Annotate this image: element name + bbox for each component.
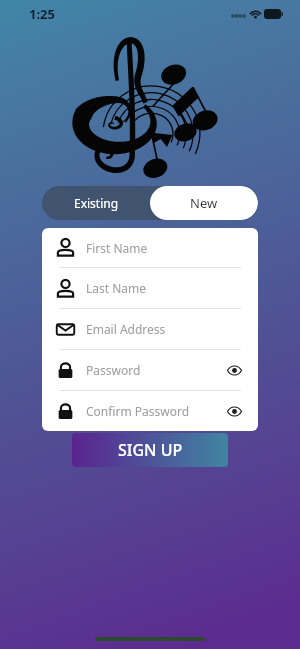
button[interactable]: New (150, 186, 258, 220)
staticText: 1:25 (29, 5, 55, 23)
button[interactable]: Email Address (42, 309, 258, 349)
staticText: Last Name (86, 280, 147, 296)
button[interactable]: Existing (42, 186, 150, 220)
button[interactable]: SIGN UP (72, 433, 228, 467)
staticText: Existing (74, 195, 119, 211)
staticText: Email Address (86, 321, 166, 337)
button[interactable]: Password (42, 350, 258, 390)
button[interactable]: Show password (222, 358, 246, 382)
button[interactable]: Show password (222, 399, 246, 423)
button[interactable]: First Name (42, 228, 258, 267)
staticText: SIGN UP (118, 439, 183, 461)
staticText: New (190, 194, 218, 212)
staticText: Confirm Password (86, 403, 190, 419)
button[interactable]: Confirm Password (42, 391, 258, 431)
button[interactable]: Last Name (42, 268, 258, 308)
staticText: Password (86, 362, 141, 378)
staticText: First Name (86, 240, 148, 256)
